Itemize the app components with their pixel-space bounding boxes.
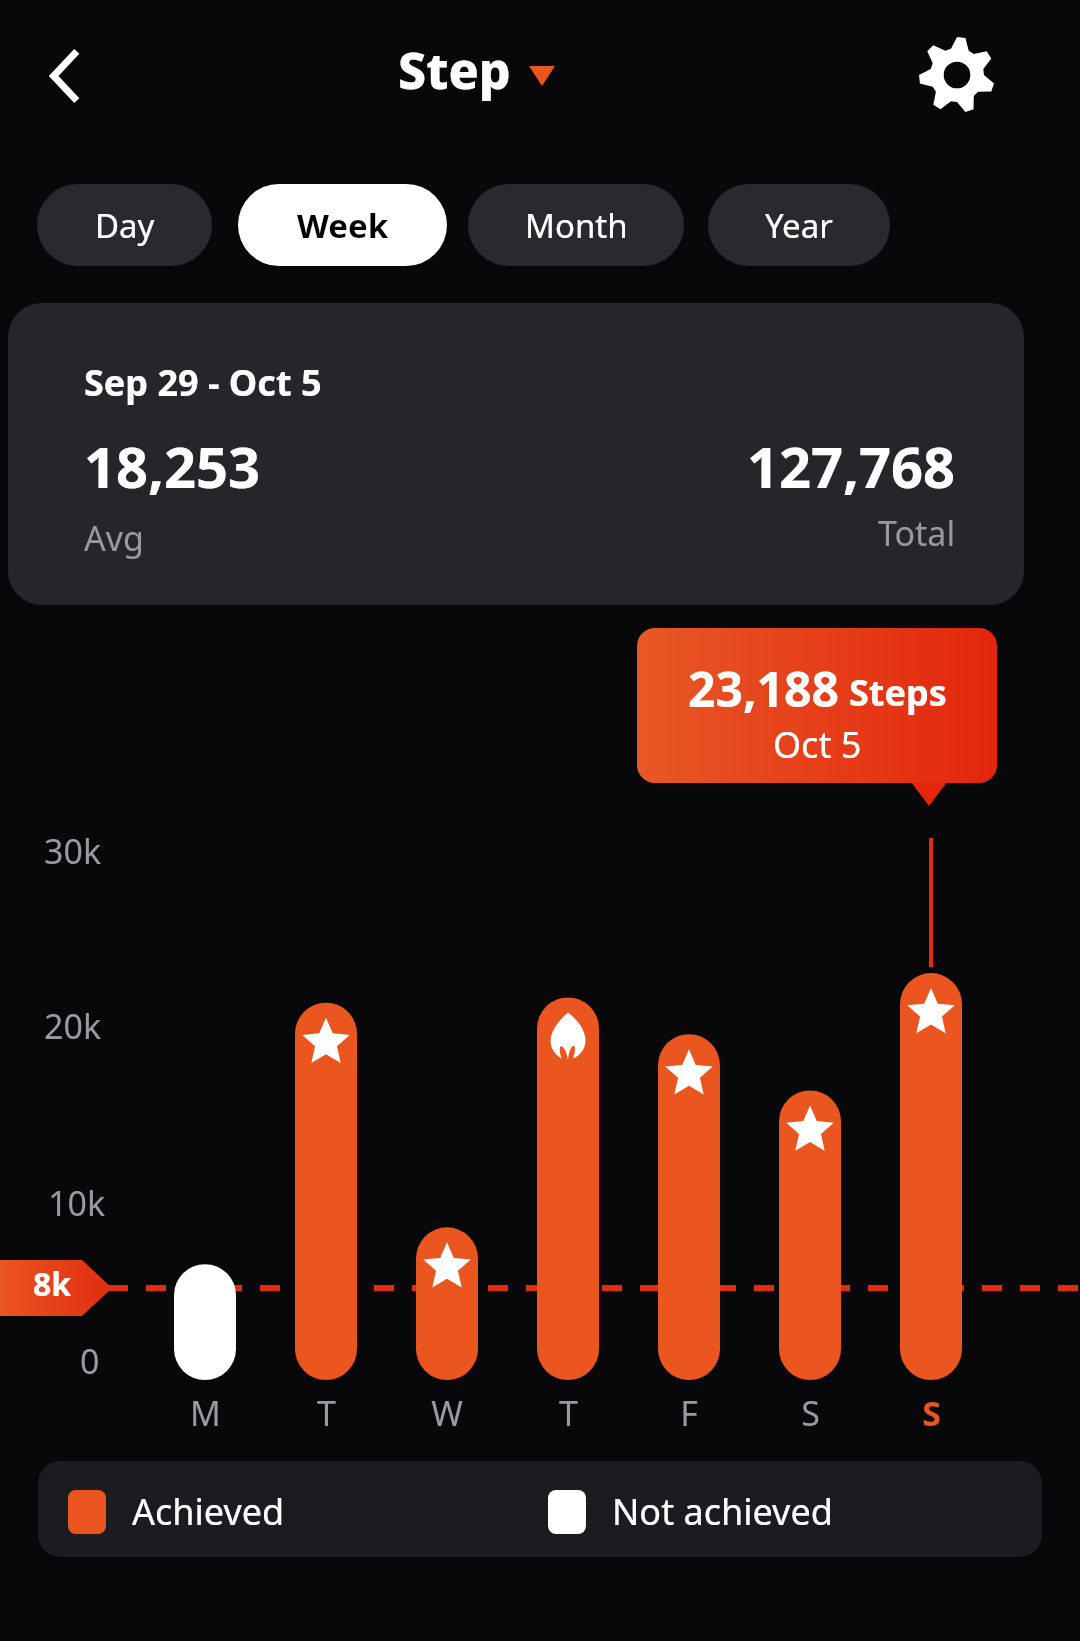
staticText: Achieved <box>132 1487 285 1536</box>
staticText: Total <box>878 510 956 556</box>
button[interactable]: Week <box>238 184 447 266</box>
staticText: Avg <box>84 515 144 561</box>
staticText: 10k <box>48 1180 106 1226</box>
staticText: Year <box>765 203 833 248</box>
staticText: W <box>431 1390 463 1436</box>
staticText: Month <box>525 203 628 248</box>
staticText: 30k <box>44 828 102 874</box>
button[interactable]: Settings <box>912 30 1002 120</box>
staticText: Steps <box>849 668 947 717</box>
staticText: Day <box>95 203 155 248</box>
staticText: Not achieved <box>612 1487 833 1536</box>
staticText: 127,768 <box>747 428 956 504</box>
staticText: Sep 29 - Oct 5 <box>84 358 322 407</box>
button[interactable]: Month <box>468 184 684 266</box>
staticText: F <box>680 1390 698 1436</box>
staticText: 0 <box>80 1338 100 1384</box>
staticText: T <box>317 1390 336 1436</box>
staticText: Step <box>398 36 511 104</box>
staticText: 20k <box>44 1003 102 1049</box>
button[interactable]: Back <box>30 38 106 114</box>
staticText: 8k <box>33 1262 72 1306</box>
staticText: Week <box>297 203 389 248</box>
staticText: M <box>190 1390 221 1436</box>
staticText: 23,188 <box>688 656 839 721</box>
button[interactable]: Sep 29 - Oct 5 <box>8 303 1024 605</box>
staticText: 18,253 <box>84 428 261 504</box>
button[interactable]: Day <box>37 184 212 266</box>
staticText: S <box>801 1390 820 1436</box>
button[interactable]: Step <box>398 36 555 104</box>
staticText: T <box>559 1390 578 1436</box>
button[interactable]: Year <box>708 184 890 266</box>
staticText: S <box>922 1390 941 1436</box>
button[interactable]: 23,188 <box>637 628 997 783</box>
staticText: Oct 5 <box>773 720 862 769</box>
